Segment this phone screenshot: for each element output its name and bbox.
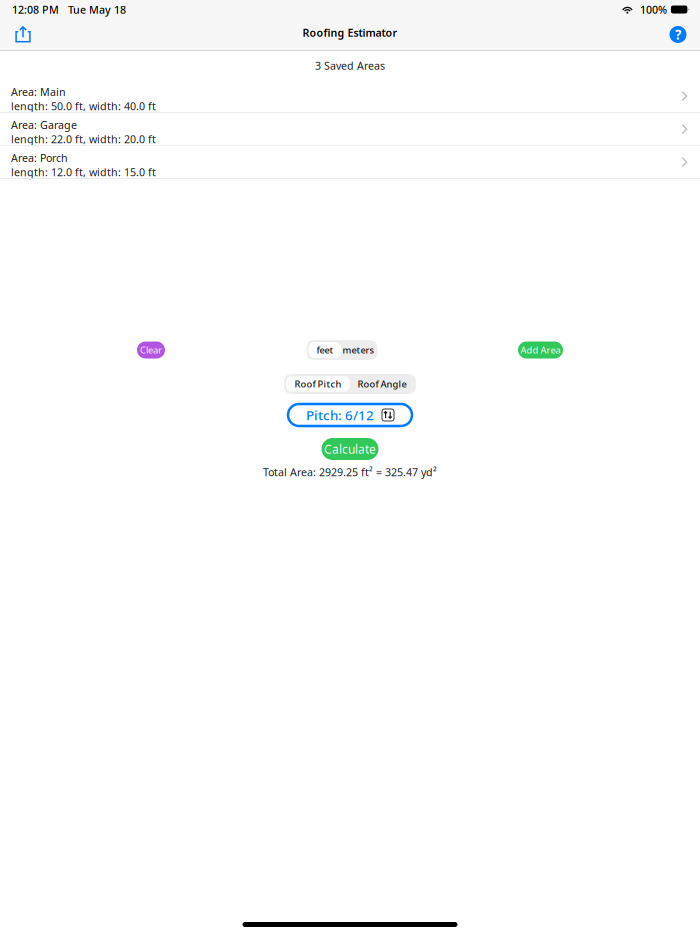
button[interactable]: Roof Angle	[350, 376, 414, 392]
staticText: Pitch: 6/12	[306, 406, 374, 424]
staticText: Add Area	[520, 344, 560, 356]
staticText: length: 12.0 ft, width: 15.0 ft	[11, 165, 156, 179]
button[interactable]: feet	[308, 342, 341, 358]
staticText: Area: Porch	[11, 151, 68, 165]
button[interactable]: meters	[341, 342, 375, 358]
staticText: length: 22.0 ft, width: 20.0 ft	[11, 132, 156, 146]
staticText: Clear	[140, 344, 162, 356]
button[interactable]: Area: Garage	[0, 113, 700, 145]
button[interactable]: Pitch: 6/12	[288, 404, 412, 426]
button[interactable]: Calculate	[321, 438, 378, 460]
staticText: Area: Garage	[11, 118, 77, 132]
button[interactable]: Area: Porch	[0, 146, 700, 178]
staticText: 3 Saved Areas	[315, 58, 385, 73]
button[interactable]: Clear	[137, 341, 165, 358]
staticText: feet	[316, 344, 333, 356]
staticText: Tue May 18	[68, 2, 126, 17]
staticText: meters	[342, 344, 374, 356]
staticText: Roof Angle	[357, 378, 406, 390]
staticText: Total Area: 2929.25 ft² = 325.47 yd²	[263, 465, 437, 479]
button[interactable]: Area: Main	[0, 80, 700, 112]
staticText: Roof Pitch	[294, 378, 341, 390]
staticText: Calculate	[324, 441, 376, 457]
button[interactable]: Share	[8, 22, 38, 46]
staticText: Roofing Estimator	[302, 25, 397, 40]
staticText: Area: Main	[11, 85, 66, 99]
button[interactable]: Add Area	[518, 341, 563, 358]
staticText: 100%	[640, 2, 667, 17]
staticText: ?	[675, 26, 681, 43]
button[interactable]: Help	[665, 22, 691, 46]
staticText: 12:08 PM	[12, 2, 59, 17]
staticText: length: 50.0 ft, width: 40.0 ft	[11, 99, 156, 113]
button[interactable]: Roof Pitch	[286, 376, 350, 392]
